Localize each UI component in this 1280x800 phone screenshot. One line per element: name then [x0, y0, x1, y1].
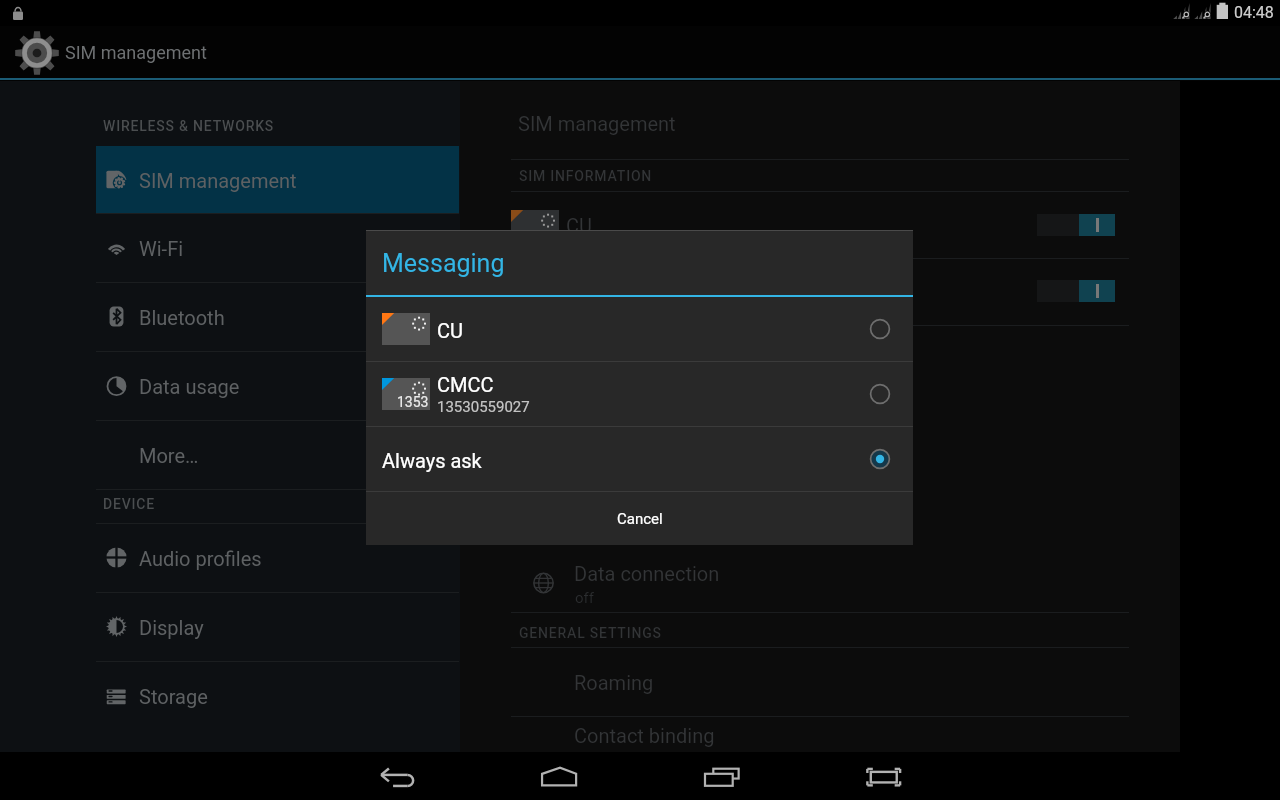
staticText: SIM management [518, 112, 676, 135]
staticText: DEVICE [103, 496, 155, 512]
button[interactable]: Back [372, 752, 424, 800]
staticText: Audio profiles [139, 547, 262, 570]
staticText: Contact binding [574, 724, 715, 747]
button[interactable]: Wi-Fi [96, 214, 459, 281]
staticText: Cancel [617, 510, 663, 528]
button[interactable]: Screenshot [858, 752, 910, 800]
staticText: More… [139, 444, 199, 467]
staticText: Bluetooth [139, 306, 225, 329]
button[interactable]: More… [96, 421, 459, 488]
staticText: CU [437, 319, 463, 342]
button[interactable]: Recent apps [696, 752, 748, 800]
staticText: Always ask [382, 449, 482, 472]
staticText: Display [139, 616, 204, 639]
button[interactable]: Always ask [366, 427, 913, 491]
button[interactable]: Home [534, 752, 586, 800]
staticText: GENERAL SETTINGS [519, 625, 662, 641]
button[interactable]: Storage [96, 662, 459, 729]
staticText: Messaging [382, 249, 505, 278]
staticText: Data usage [139, 375, 240, 398]
staticText: CU [566, 214, 592, 237]
staticText: 1353 [397, 394, 429, 410]
staticText: Roaming [574, 671, 654, 694]
button[interactable]: CU [366, 297, 913, 361]
staticText: CMCC [437, 373, 494, 396]
button[interactable] [1037, 280, 1115, 302]
staticText: off [575, 589, 594, 607]
staticText: Storage [139, 685, 208, 708]
button[interactable]: Display [96, 593, 459, 660]
staticText: SIM INFORMATION [519, 168, 653, 184]
button[interactable]: 1353 [366, 362, 913, 426]
button[interactable]: Audio profiles [96, 524, 459, 591]
staticText: WIRELESS & NETWORKS [103, 118, 275, 134]
button[interactable]: Bluetooth [96, 283, 459, 350]
button[interactable]: Cancel [366, 492, 913, 545]
button[interactable]: Data usage [96, 352, 459, 419]
staticText: Data connection [574, 562, 720, 585]
staticText: 04:48 [1234, 3, 1274, 22]
button[interactable] [1037, 214, 1115, 236]
staticText: SIM management [139, 169, 297, 192]
staticText: Wi-Fi [139, 237, 184, 260]
staticText: 13530559027 [437, 398, 530, 416]
button[interactable]: SIM management [96, 146, 459, 213]
staticText: SIM management [65, 42, 207, 63]
